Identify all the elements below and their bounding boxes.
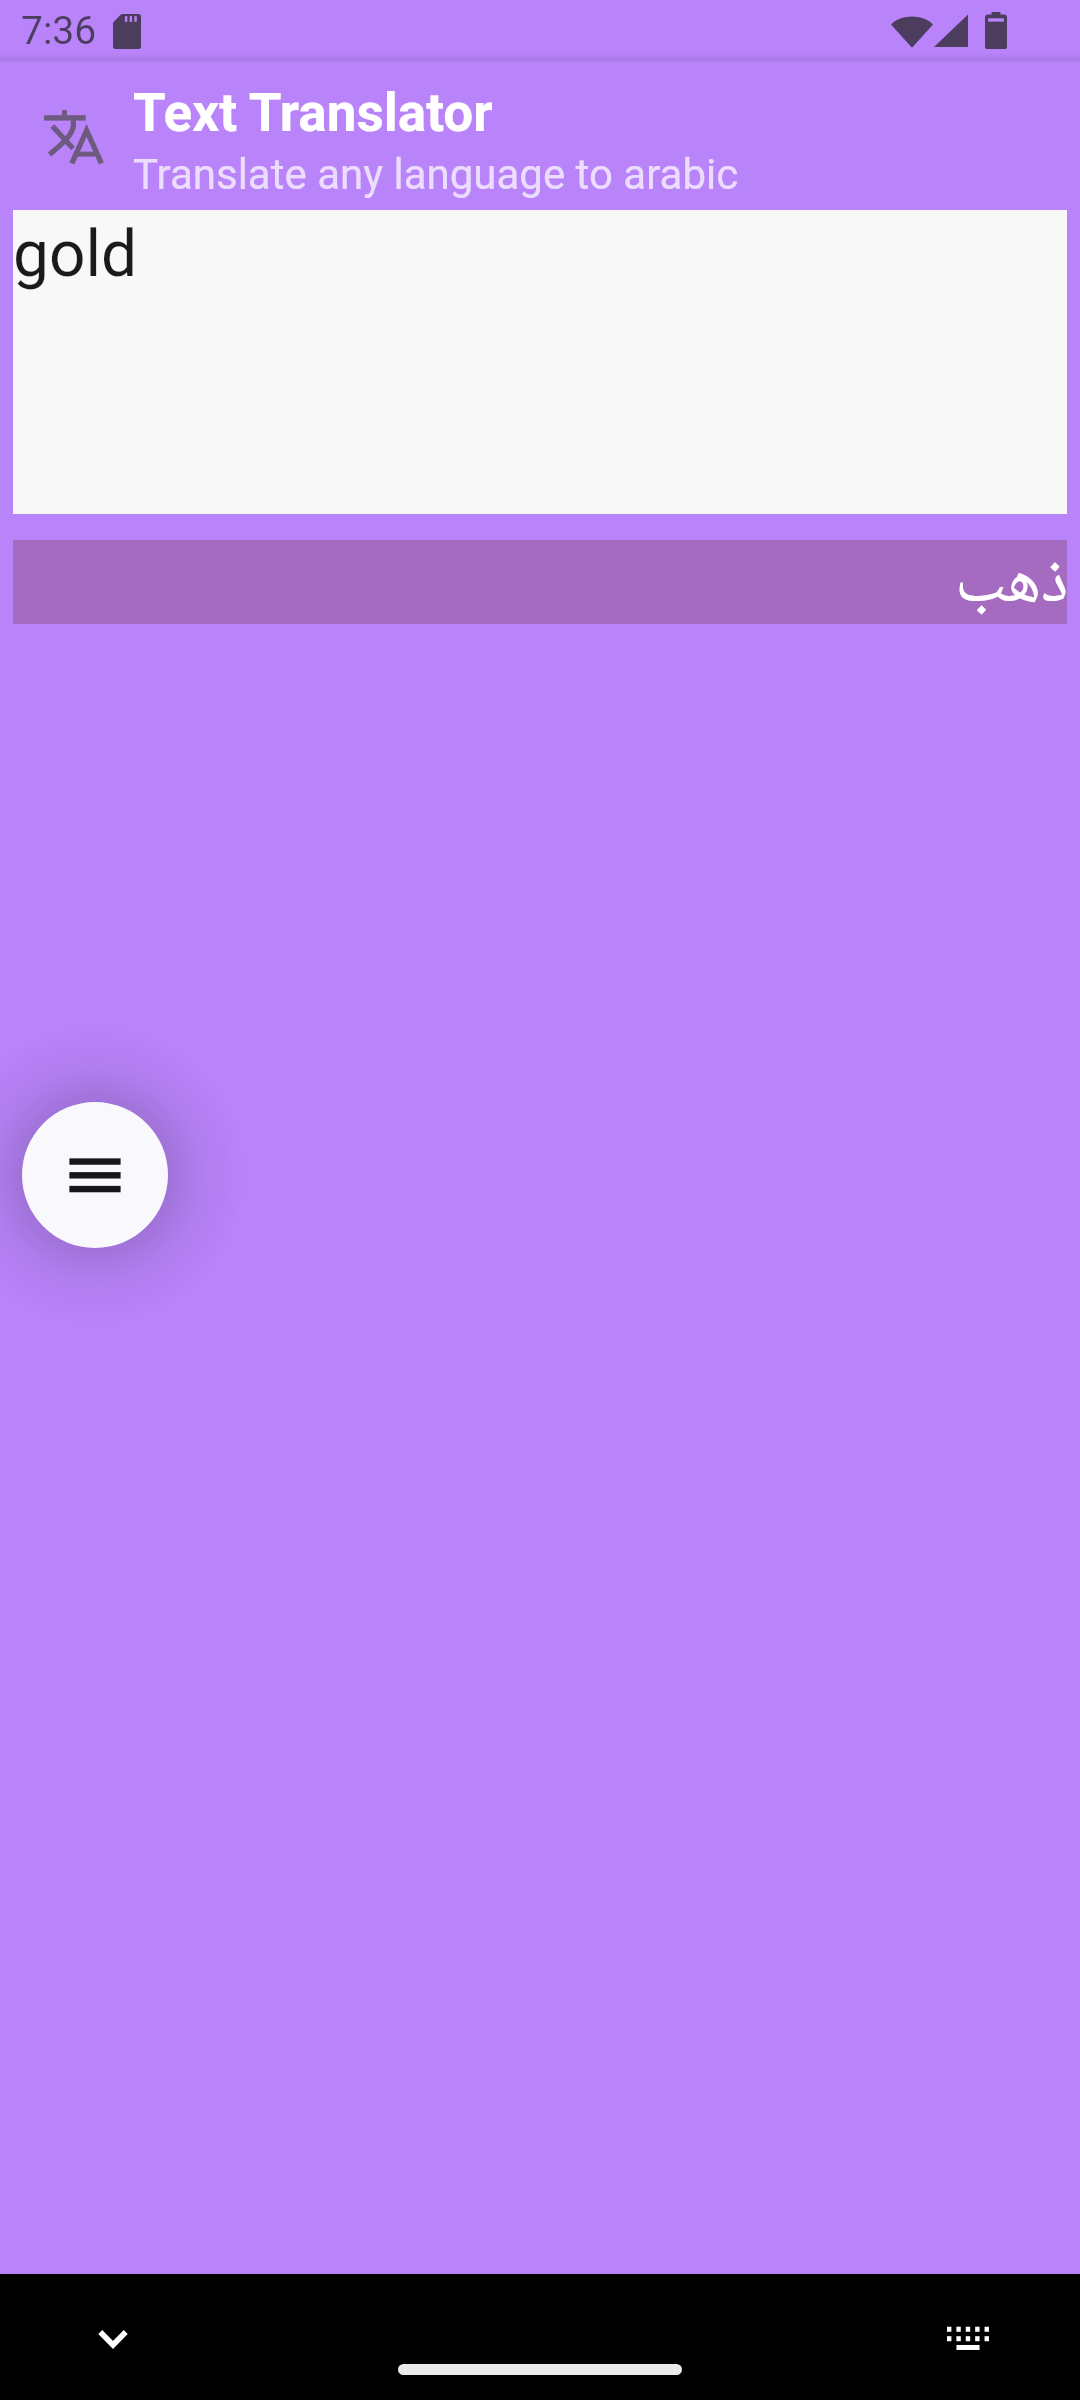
- button[interactable]: ذهب: [13, 540, 1067, 624]
- staticText: gold: [13, 217, 138, 292]
- staticText: Text Translator: [133, 82, 493, 144]
- button[interactable]: Menu: [22, 1102, 168, 1248]
- staticText: Translate any language to arabic: [133, 150, 739, 199]
- button[interactable]: Translate: [39, 105, 109, 175]
- button[interactable]: Hide keyboard: [67, 2283, 159, 2375]
- staticText: ذهب: [955, 532, 1069, 616]
- button[interactable]: gold: [13, 210, 1067, 514]
- staticText: 7:36: [21, 8, 97, 54]
- button[interactable]: Switch keyboard: [922, 2280, 1014, 2372]
